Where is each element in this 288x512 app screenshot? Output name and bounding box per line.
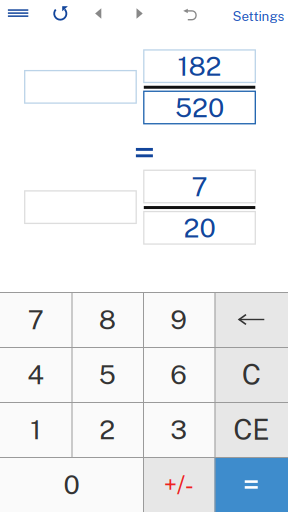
staticText: 182 — [178, 50, 222, 82]
button[interactable]: 7 — [144, 170, 255, 203]
staticText: 7 — [192, 171, 208, 202]
staticText: 6 — [170, 359, 187, 390]
staticText: 4 — [27, 359, 44, 390]
staticText: CE — [233, 413, 269, 446]
button[interactable]: 520 — [144, 91, 255, 124]
button[interactable]: 6 — [143, 347, 214, 402]
staticText: 1 — [30, 414, 41, 445]
button[interactable]: Menu — [0, 0, 37, 28]
button[interactable]: 7 — [0, 292, 71, 347]
staticText: 20 — [184, 212, 216, 243]
button[interactable]: Previous — [79, 0, 117, 28]
button[interactable]: Backspace — [214, 292, 288, 347]
button[interactable]: Clear entry — [214, 402, 288, 457]
button[interactable]: Settings — [227, 1, 288, 31]
button[interactable]: +/- — [143, 457, 214, 512]
staticText: +/- — [164, 470, 194, 499]
button[interactable]: 20 — [144, 212, 255, 244]
staticText: Settings — [232, 8, 284, 24]
button[interactable]: Undo — [170, 0, 210, 30]
staticText: 3 — [170, 414, 187, 445]
staticText: 9 — [170, 304, 187, 335]
button[interactable]: 0 — [0, 457, 143, 512]
button[interactable] — [25, 191, 136, 223]
button[interactable]: 1 — [0, 402, 71, 457]
button[interactable]: Clear — [214, 347, 288, 402]
button[interactable]: Next — [121, 0, 159, 28]
button[interactable]: 5 — [71, 347, 143, 402]
button[interactable]: Equals — [214, 457, 288, 512]
button[interactable]: 2 — [71, 402, 143, 457]
button[interactable]: 3 — [143, 402, 214, 457]
staticText: 7 — [28, 304, 44, 335]
staticText: 520 — [175, 92, 224, 123]
button[interactable] — [25, 71, 136, 103]
button[interactable]: 4 — [0, 347, 71, 402]
button[interactable]: 182 — [144, 50, 255, 82]
button[interactable]: 9 — [143, 292, 214, 347]
staticText: C — [242, 358, 261, 391]
button[interactable]: 8 — [71, 292, 143, 347]
staticText: 0 — [63, 469, 79, 500]
staticText: 8 — [99, 304, 116, 335]
staticText: 2 — [99, 414, 115, 445]
button[interactable]: Reset — [42, 0, 80, 29]
staticText: 5 — [99, 359, 116, 390]
